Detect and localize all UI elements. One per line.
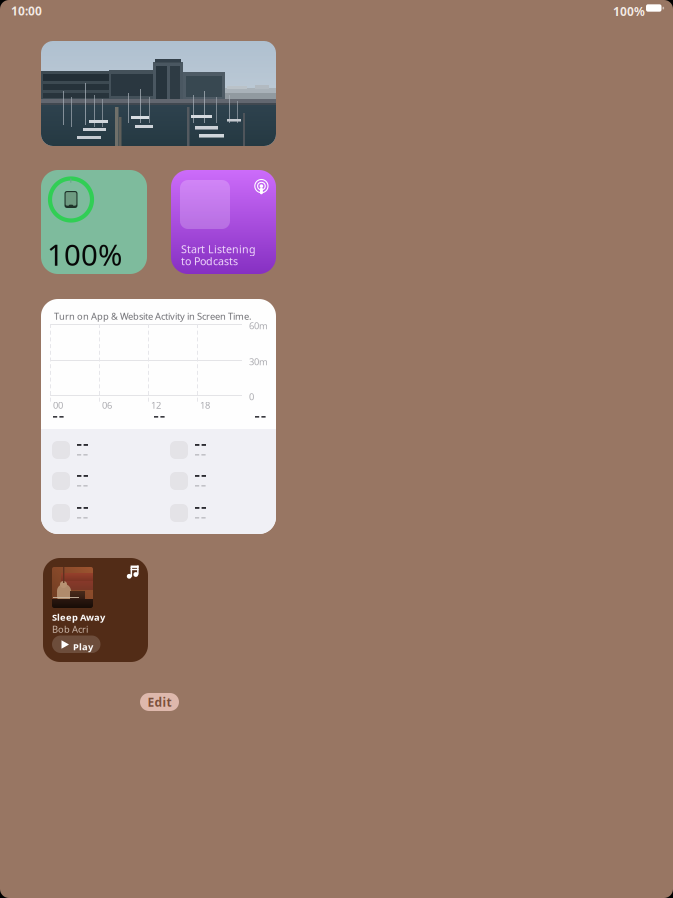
button[interactable]: Edit <box>140 693 179 711</box>
staticText: 10:00 <box>11 3 42 19</box>
staticText: Start Listening <box>181 242 256 256</box>
button[interactable]: Photos widget <box>41 41 276 146</box>
staticText: Play <box>73 640 93 653</box>
staticText: 0 <box>249 390 254 403</box>
button[interactable]: Screen Time widget <box>41 299 276 534</box>
staticText: Sleep Away <box>52 611 105 623</box>
staticText: 30m <box>249 355 268 368</box>
button[interactable]: Battery 100 percent <box>41 170 147 274</box>
staticText: 60m <box>249 319 268 332</box>
button[interactable]: Podcasts widget <box>171 170 276 274</box>
staticText: 100% <box>47 235 122 274</box>
staticText: to Podcasts <box>181 254 238 268</box>
staticText: Bob Acri <box>52 623 88 635</box>
staticText: 06 <box>102 399 112 411</box>
staticText: Edit <box>147 694 171 710</box>
staticText: 18 <box>200 399 210 411</box>
staticText: 12 <box>151 399 161 411</box>
staticText: 00 <box>53 399 63 411</box>
staticText: Turn on App & Website Activity in Screen… <box>54 310 252 322</box>
button[interactable]: Now playing Sleep Away by Bob Acri <box>43 558 148 662</box>
staticText: 100% <box>613 3 645 19</box>
